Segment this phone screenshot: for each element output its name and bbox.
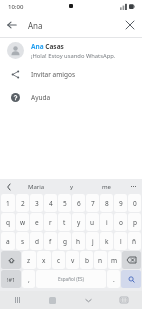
staticText: , [28,275,30,284]
button[interactable]: Invitar amigos [0,63,142,86]
button[interactable]: q [1,213,15,231]
button[interactable]: t [58,213,71,231]
staticText: 0 [133,199,137,208]
staticText: g [63,237,67,246]
staticText: i [106,218,108,227]
button[interactable]: Ana Casas [0,38,142,63]
button[interactable]: Español (ES) [36,270,106,288]
button[interactable]: c [52,251,65,269]
button[interactable]: Change keyboard [106,291,142,309]
button[interactable]: 9 [114,194,127,212]
button[interactable]: a [1,232,15,250]
button[interactable]: 4 [44,194,57,212]
button[interactable]: w [16,213,29,231]
button[interactable]: y [72,213,85,231]
button[interactable]: 7 [86,194,99,212]
staticText: c [57,256,61,265]
staticText: 7 [91,199,95,208]
staticText: y [70,183,74,191]
button[interactable]: , [22,270,35,288]
button[interactable]: me [89,179,124,194]
staticText: p [133,218,137,227]
staticText: l [120,237,122,246]
button[interactable]: Backspace [122,251,141,269]
staticText: 4 [49,199,53,208]
button[interactable]: Home [35,291,70,309]
button[interactable]: Clear search [118,13,142,37]
staticText: t [63,218,66,227]
button[interactable]: y [54,179,89,194]
staticText: Maria [28,183,45,191]
staticText: n [98,256,103,265]
button[interactable]: More options [124,179,142,194]
staticText: o [119,218,123,227]
button[interactable]: f [44,232,57,250]
staticText: 2 [21,199,25,208]
button[interactable]: v [66,251,79,269]
button[interactable]: Search [121,270,141,288]
button[interactable]: 2 [16,194,29,212]
button[interactable]: 1 [1,194,15,212]
button[interactable]: Recents [0,291,35,309]
button[interactable]: h [72,232,85,250]
staticText: 5 [63,199,67,208]
staticText: y [77,218,81,227]
button[interactable]: i [100,213,113,231]
button[interactable]: j [86,232,99,250]
button[interactable]: 0 [128,194,141,212]
button[interactable]: u [86,213,99,231]
staticText: 10:00 [8,3,24,11]
staticText: a [6,237,10,246]
button[interactable]: s [16,232,29,250]
staticText: ¡Hola! Estoy usando WhatsApp. [31,52,116,60]
staticText: 9 [119,199,123,208]
button[interactable]: Ayuda [0,86,142,109]
staticText: q [6,218,10,227]
button[interactable]: Previous suggestions [0,179,18,194]
button[interactable]: Shift [1,251,21,269]
button[interactable]: e [30,213,43,231]
staticText: w [20,218,26,227]
button[interactable]: !#1 [1,270,21,288]
staticText: v [71,256,75,265]
button[interactable]: d [30,232,43,250]
button[interactable]: 3 [30,194,43,212]
staticText: r [49,218,52,227]
staticText: u [90,218,95,227]
staticText: e [35,218,39,227]
staticText: k [105,237,109,246]
staticText: d [35,237,39,246]
button[interactable]: 5 [58,194,71,212]
staticText: j [92,237,94,246]
staticText: ñ [132,237,137,246]
staticText: z [27,256,31,265]
staticText: me [102,183,111,191]
button[interactable]: z [22,251,36,269]
button[interactable]: o [114,213,127,231]
staticText: b [85,256,89,265]
button[interactable]: m [108,251,121,269]
staticText: h [76,237,81,246]
button[interactable]: b [80,251,93,269]
staticText: 6 [77,199,81,208]
button[interactable]: g [58,232,71,250]
button[interactable]: 6 [72,194,85,212]
button[interactable]: r [44,213,57,231]
button[interactable]: . [107,270,120,288]
button[interactable]: p [128,213,141,231]
button[interactable]: Maria [18,179,54,194]
staticText: 3 [35,199,39,208]
button[interactable]: 8 [100,194,113,212]
staticText: s [21,237,25,246]
button[interactable]: n [94,251,107,269]
staticText: Invitar amigos [31,70,76,79]
staticText: !#1 [7,276,16,283]
button[interactable]: l [114,232,127,250]
button[interactable]: x [37,251,51,269]
button[interactable]: k [100,232,113,250]
button[interactable]: Back [0,13,24,37]
button[interactable]: ñ [128,232,141,250]
staticText: . [113,275,115,284]
staticText: Ana Casas [31,42,64,51]
button[interactable]: Hide keyboard [70,291,106,309]
